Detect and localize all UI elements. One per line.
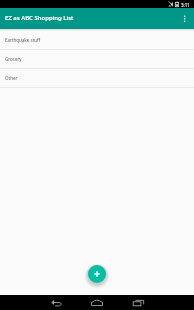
button[interactable]: Add list bbox=[86, 263, 108, 285]
button[interactable]: Recent apps bbox=[127, 295, 149, 310]
button[interactable]: Back bbox=[45, 295, 67, 310]
button[interactable]: Home bbox=[86, 295, 108, 310]
button[interactable]: More options bbox=[176, 8, 194, 29]
button[interactable]: Other bbox=[0, 69, 194, 88]
staticText: EZ as ABC Shopping List bbox=[5, 14, 74, 22]
staticText: 3:11 bbox=[181, 2, 190, 8]
staticText: Other bbox=[5, 75, 18, 81]
button[interactable]: Grocery bbox=[0, 50, 194, 69]
staticText: Grocery bbox=[5, 56, 22, 62]
staticText: Earthquake stuff bbox=[5, 37, 41, 43]
button[interactable]: Earthquake stuff bbox=[0, 31, 194, 50]
